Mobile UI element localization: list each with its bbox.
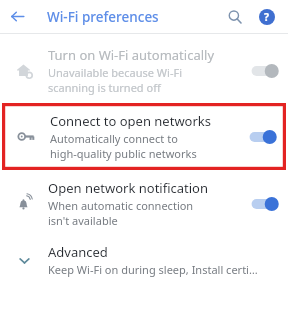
staticText: Open network notification (48, 179, 208, 197)
staticText: Turn on Wi-Fi automatically (48, 46, 215, 64)
button[interactable]: Help (252, 2, 282, 32)
button[interactable]: Connect to open networks (2, 103, 286, 170)
button[interactable]: Turn on Wi-Fi automatically (244, 63, 288, 79)
staticText: Automatically connect to (50, 131, 178, 146)
button[interactable]: Back (0, 0, 34, 33)
button[interactable]: Advanced (0, 238, 288, 282)
staticText: Connect to open networks (50, 112, 212, 130)
staticText: isn't available (48, 213, 118, 228)
staticText: Unavailable because Wi-Fi (48, 65, 182, 80)
staticText: Keep Wi-Fi on during sleep, Install cert… (48, 262, 258, 277)
staticText: Wi-Fi preferences (47, 8, 159, 26)
button[interactable]: Turn on Wi-Fi automatically (0, 41, 288, 100)
button[interactable]: Open network notification (244, 196, 288, 212)
button[interactable]: Search (220, 2, 250, 32)
staticText: scanning is turned off (48, 80, 161, 95)
staticText: high-quality public networks (50, 146, 197, 161)
staticText: When automatic connection (48, 198, 194, 213)
staticText: Advanced (48, 243, 108, 261)
button[interactable]: Connect to open networks (242, 129, 286, 145)
button[interactable]: Open network notification (0, 174, 288, 233)
staticText: ? (264, 10, 270, 24)
